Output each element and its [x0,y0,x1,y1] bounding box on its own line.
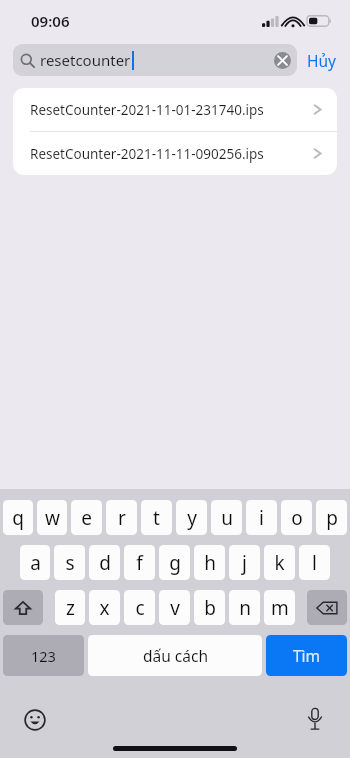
staticText: 09:06 [31,11,70,31]
staticText: e [81,505,92,531]
button[interactable]: 123 [3,635,84,676]
button[interactable]: t [141,500,172,535]
button[interactable]: p [316,500,347,535]
staticText: d [99,550,111,576]
staticText: l [312,550,317,576]
button[interactable]: o [281,500,312,535]
staticText: z [66,595,75,621]
button[interactable]: dấu cách [88,635,262,676]
button[interactable]: w [37,500,67,535]
button[interactable]: y [176,500,207,535]
staticText: q [12,505,24,531]
button[interactable]: f [124,545,155,580]
staticText: a [30,550,41,576]
staticText: Hủy [307,50,336,71]
staticText: w [45,505,60,531]
staticText: v [170,595,180,621]
staticText: p [326,505,338,531]
button[interactable]: g [159,545,190,580]
staticText: h [204,550,216,576]
button[interactable]: Tìm [266,635,347,676]
staticText: Tìm [293,645,321,666]
staticText: s [65,550,75,576]
staticText: k [274,550,285,576]
button[interactable]: j [229,545,260,580]
button[interactable]: m [264,590,295,625]
button[interactable]: k [264,545,295,580]
staticText: g [169,550,181,576]
button[interactable]: a [20,545,50,580]
button[interactable]: resetcounter [13,44,297,76]
staticText: r [118,505,126,531]
button[interactable]: e [71,500,102,535]
button[interactable]: Hủy [297,50,337,71]
staticText: f [136,550,143,576]
staticText: dấu cách [143,645,208,666]
button[interactable]: ResetCounter-2021-11-11-090256.ips [13,132,337,175]
staticText: j [242,550,247,576]
staticText: ResetCounter-2021-11-01-231740.ips [30,101,313,119]
button[interactable]: Delete [307,590,347,625]
button[interactable]: d [89,545,120,580]
button[interactable]: ResetCounter-2021-11-01-231740.ips [13,88,337,131]
staticText: b [204,595,216,621]
button[interactable]: z [55,590,85,625]
button[interactable]: Dictation [301,705,329,733]
staticText: x [99,595,110,621]
staticText: c [135,595,145,621]
staticText: ResetCounter-2021-11-11-090256.ips [30,145,313,163]
button[interactable]: i [246,500,277,535]
button[interactable]: Shift [3,590,43,625]
staticText: y [187,505,197,531]
button[interactable]: u [211,500,242,535]
button[interactable]: b [194,590,225,625]
button[interactable]: h [194,545,225,580]
staticText: t [153,505,160,531]
button[interactable]: x [89,590,120,625]
button[interactable]: q [3,500,33,535]
staticText: u [221,505,233,531]
staticText: m [271,595,289,621]
button[interactable]: c [124,590,155,625]
button[interactable]: s [54,545,85,580]
button[interactable]: r [106,500,137,535]
button[interactable]: v [159,590,190,625]
button[interactable]: n [229,590,260,625]
staticText: resetcounter [40,50,131,70]
staticText: 123 [31,646,56,666]
staticText: n [239,595,251,621]
staticText: o [291,505,303,531]
staticText: i [259,505,264,531]
button[interactable]: l [299,545,330,580]
button[interactable]: Clear text [274,52,291,69]
button[interactable]: Emoji keyboard [21,706,49,734]
